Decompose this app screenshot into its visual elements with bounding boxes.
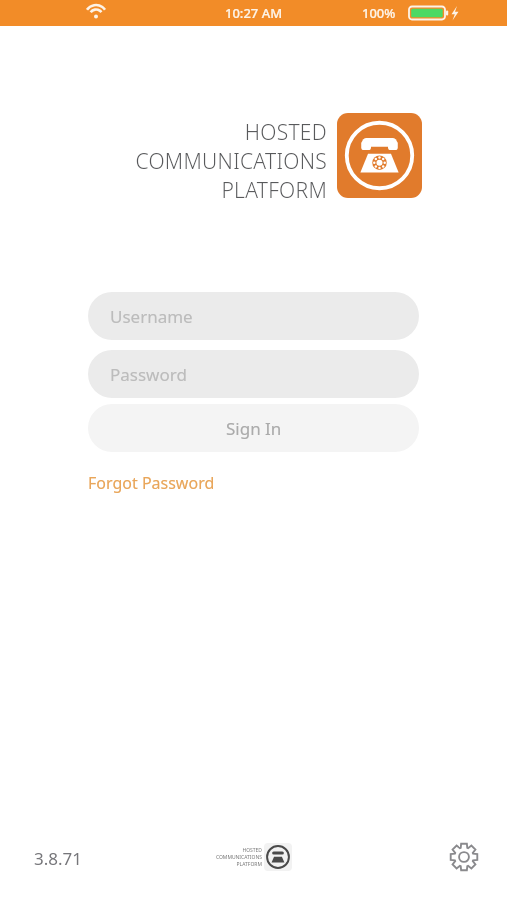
staticText: COMMUNICATIONS — [215, 854, 262, 861]
staticText: Password — [110, 363, 187, 386]
button[interactable]: Username — [88, 292, 419, 340]
button[interactable]: Settings — [447, 840, 481, 874]
button[interactable]: Password — [88, 350, 419, 398]
staticText: Sign In — [226, 417, 282, 440]
staticText: HOSTED — [242, 847, 262, 854]
staticText: 10:27 AM — [225, 4, 283, 22]
staticText: PLATFORM — [221, 176, 327, 205]
staticText: Username — [110, 305, 193, 328]
button[interactable]: Forgot Password — [88, 468, 215, 498]
staticText: 100% — [362, 4, 396, 22]
staticText: HOSTED — [244, 118, 327, 147]
staticText: PLATFORM — [236, 861, 262, 868]
button[interactable]: Sign In — [88, 404, 419, 452]
staticText: Forgot Password — [88, 472, 215, 494]
staticText: COMMUNICATIONS — [135, 147, 327, 176]
staticText: 3.8.71 — [34, 847, 83, 870]
